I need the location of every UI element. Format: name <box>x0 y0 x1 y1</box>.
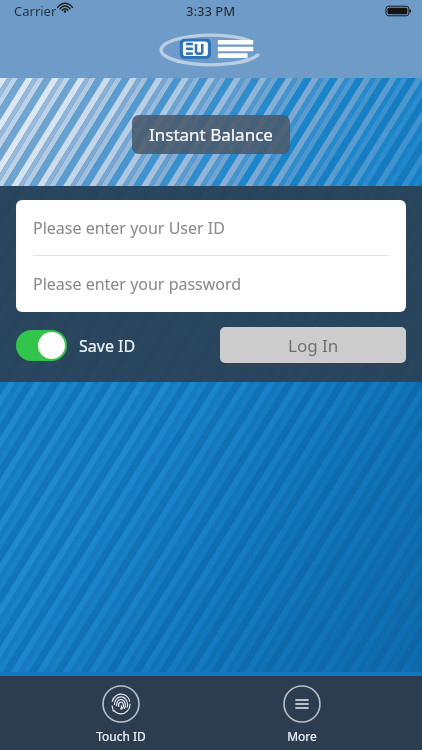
staticText: 3:33 PM <box>186 2 236 20</box>
staticText: More <box>287 728 317 744</box>
staticText: Touch ID <box>96 728 146 744</box>
button[interactable]: Please enter your password <box>16 256 406 312</box>
staticText: Log In <box>288 334 339 357</box>
staticText: Please enter your password <box>33 273 242 295</box>
staticText: Instant Balance <box>149 123 273 146</box>
button[interactable]: Instant Balance <box>132 115 290 154</box>
button[interactable]: More <box>241 685 362 744</box>
button[interactable]: Save ID <box>16 330 136 361</box>
button[interactable]: Log In <box>220 327 406 363</box>
button[interactable]: Please enter your User ID <box>16 200 406 255</box>
staticText: Save ID <box>79 335 136 357</box>
staticText: Carrier <box>14 2 57 20</box>
staticText: Please enter your User ID <box>33 217 225 239</box>
button[interactable]: Touch ID <box>60 685 181 744</box>
